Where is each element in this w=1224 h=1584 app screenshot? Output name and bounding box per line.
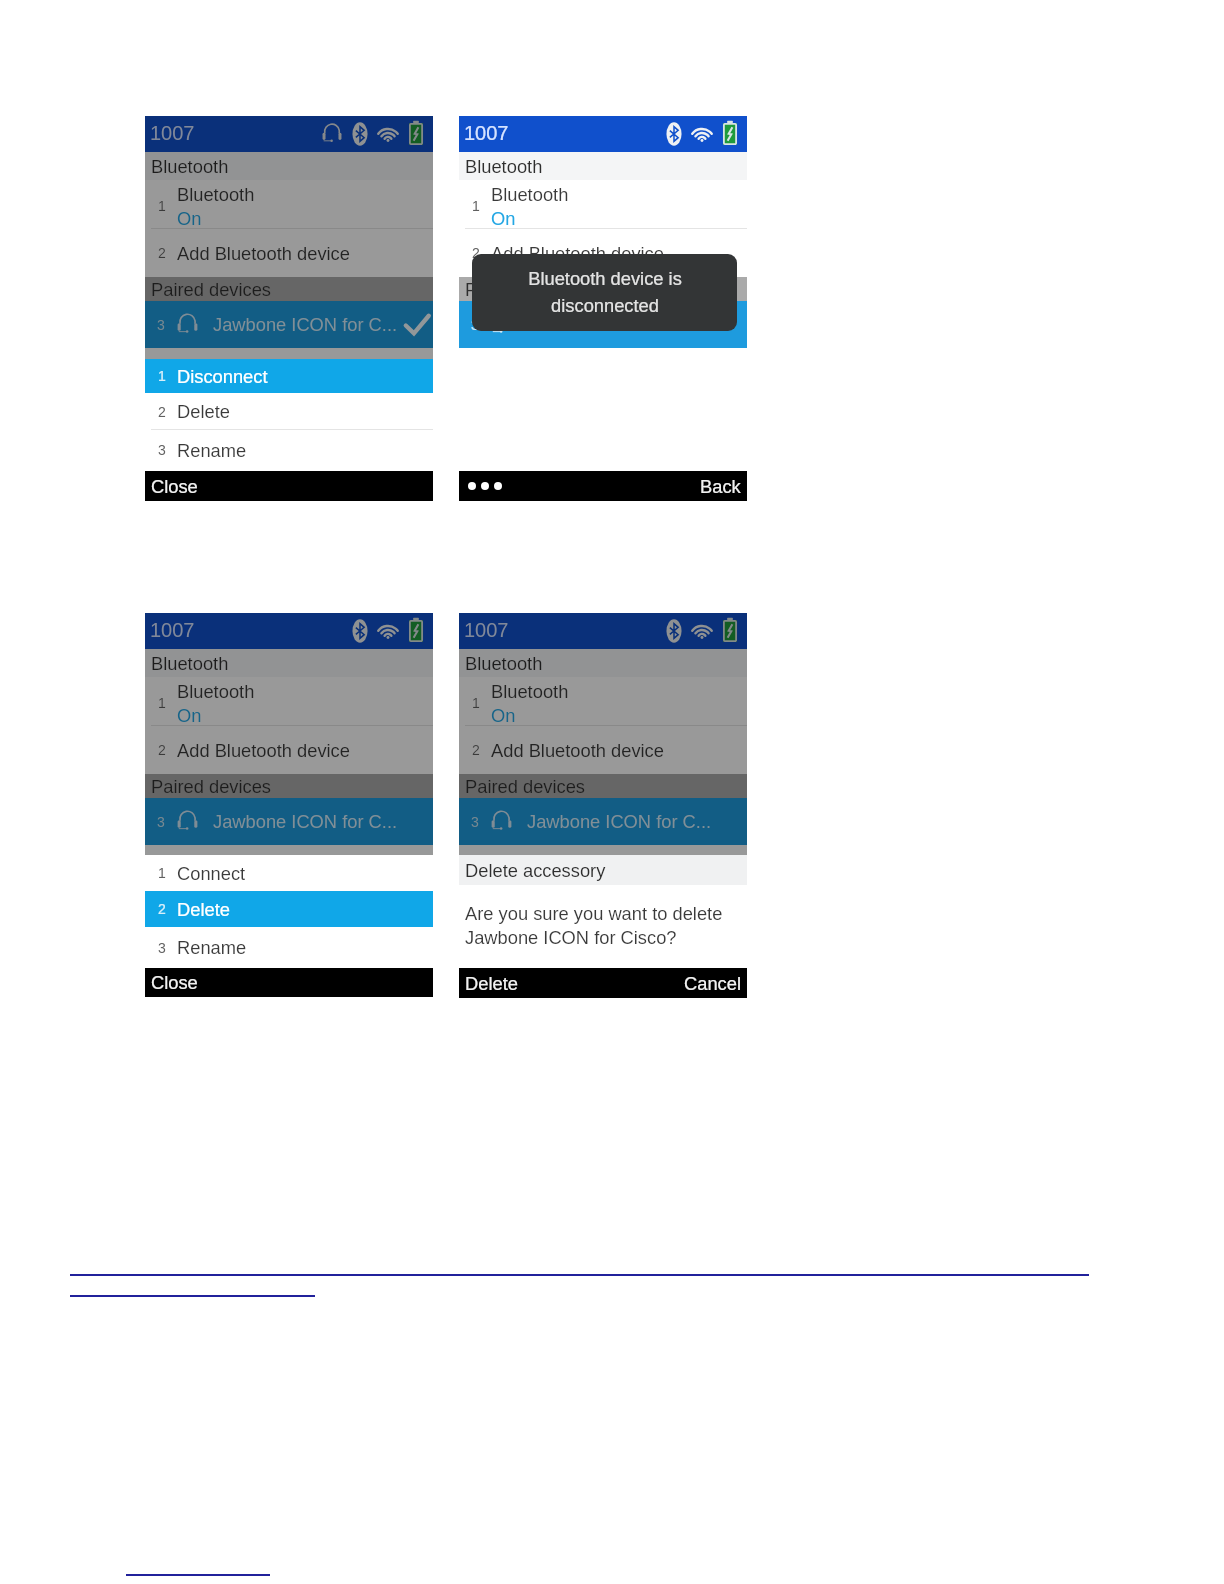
other: Headset connected bbox=[319, 121, 345, 147]
staticText: 3 bbox=[158, 940, 166, 956]
staticText: Bluetooth device is disconnected bbox=[528, 268, 682, 316]
staticText: On bbox=[177, 705, 202, 725]
button[interactable]: 3 bbox=[145, 430, 433, 470]
button[interactable]: 3 bbox=[459, 798, 747, 845]
staticText: Disconnect bbox=[177, 366, 268, 386]
staticText: 3 bbox=[157, 317, 165, 333]
staticText: Jawbone ICON for C... bbox=[527, 811, 712, 831]
staticText: 3 bbox=[158, 442, 166, 458]
staticText: Close bbox=[151, 972, 198, 992]
staticText: 1 bbox=[472, 198, 480, 214]
other: Battery charging bbox=[717, 618, 743, 644]
button[interactable]: Delete bbox=[459, 968, 579, 998]
staticText: 1 bbox=[158, 695, 166, 711]
staticText: Rename bbox=[177, 440, 247, 460]
button[interactable]: Cancel bbox=[637, 968, 747, 998]
other: Wi-Fi bbox=[689, 121, 715, 147]
staticText: 2 bbox=[158, 742, 166, 758]
staticText: 1 bbox=[158, 865, 166, 881]
staticText: Bluetooth bbox=[177, 184, 255, 204]
other: Battery charging bbox=[403, 618, 429, 644]
button[interactable]: 2 bbox=[145, 229, 433, 277]
button[interactable]: 3 bbox=[145, 301, 433, 348]
staticText: Jawbone ICON for C... bbox=[527, 314, 712, 334]
button[interactable]: Close bbox=[145, 471, 265, 501]
staticText: Rename bbox=[177, 937, 247, 957]
staticText: Add Bluetooth device bbox=[177, 740, 350, 760]
staticText: Bluetooth bbox=[465, 156, 543, 176]
button[interactable]: 3 bbox=[145, 798, 433, 845]
button[interactable]: 1 bbox=[145, 677, 433, 726]
staticText: Are you sure you want to delete Jawbone … bbox=[465, 903, 723, 948]
button[interactable]: Close bbox=[145, 968, 265, 997]
button[interactable]: 2 bbox=[145, 393, 433, 430]
staticText: Paired devices bbox=[151, 279, 272, 299]
button[interactable]: 3 bbox=[459, 301, 747, 348]
staticText: On bbox=[491, 208, 516, 228]
staticText: Bluetooth bbox=[491, 681, 569, 701]
staticText: 1 bbox=[472, 695, 480, 711]
staticText: On bbox=[177, 208, 202, 228]
staticText: 2 bbox=[472, 245, 480, 261]
staticText: Cancel bbox=[684, 973, 741, 993]
other: Bluetooth on bbox=[347, 121, 373, 147]
staticText: Bluetooth bbox=[177, 681, 255, 701]
button[interactable]: 1 bbox=[145, 180, 433, 229]
staticText: Add Bluetooth device bbox=[491, 740, 664, 760]
staticText: 3 bbox=[157, 814, 165, 830]
staticText: 2 bbox=[472, 742, 480, 758]
button[interactable]: 2 bbox=[459, 229, 747, 277]
other: Battery charging bbox=[403, 121, 429, 147]
staticText: 1007 bbox=[464, 122, 509, 144]
button[interactable]: 1 bbox=[145, 855, 433, 891]
staticText: Jawbone ICON for C... bbox=[213, 314, 398, 334]
staticText: Paired devices bbox=[465, 776, 586, 796]
staticText: Delete bbox=[177, 401, 230, 421]
button[interactable]: 2 bbox=[145, 726, 433, 774]
other: Bluetooth on bbox=[347, 618, 373, 644]
button[interactable]: Back bbox=[637, 471, 747, 501]
staticText: Bluetooth bbox=[151, 653, 229, 673]
staticText: Back bbox=[700, 476, 741, 496]
other: Wi-Fi bbox=[375, 618, 401, 644]
staticText: 1007 bbox=[150, 122, 195, 144]
staticText: Paired devices bbox=[465, 279, 586, 299]
button[interactable]: More options bbox=[459, 471, 519, 501]
button[interactable]: 2 bbox=[145, 891, 433, 927]
other: Battery charging bbox=[717, 121, 743, 147]
staticText: Close bbox=[151, 476, 198, 496]
other: Bluetooth on bbox=[661, 121, 687, 147]
staticText: Bluetooth bbox=[151, 156, 229, 176]
button[interactable]: 3 bbox=[145, 927, 433, 968]
other: Connected bbox=[403, 311, 431, 339]
staticText: Paired devices bbox=[151, 776, 272, 796]
staticText: Delete bbox=[465, 973, 518, 993]
button[interactable]: 1 bbox=[459, 180, 747, 229]
staticText: Bluetooth bbox=[465, 653, 543, 673]
button[interactable]: 1 bbox=[459, 677, 747, 726]
staticText: On bbox=[491, 705, 516, 725]
staticText: Connect bbox=[177, 863, 246, 883]
staticText: Delete accessory bbox=[465, 860, 606, 880]
staticText: 1007 bbox=[464, 619, 509, 641]
staticText: 2 bbox=[158, 404, 166, 420]
staticText: 1 bbox=[158, 368, 166, 384]
staticText: Jawbone ICON for C... bbox=[213, 811, 398, 831]
other: Bluetooth on bbox=[661, 618, 687, 644]
other: Wi-Fi bbox=[375, 121, 401, 147]
staticText: 2 bbox=[158, 901, 166, 917]
staticText: 2 bbox=[158, 245, 166, 261]
button[interactable]: 2 bbox=[459, 726, 747, 774]
staticText: 3 bbox=[471, 814, 479, 830]
staticText: Add Bluetooth device bbox=[491, 243, 664, 263]
staticText: Add Bluetooth device bbox=[177, 243, 350, 263]
staticText: 3 bbox=[471, 317, 479, 333]
staticText: Delete bbox=[177, 899, 230, 919]
staticText: 1 bbox=[158, 198, 166, 214]
staticText: Bluetooth bbox=[491, 184, 569, 204]
other: Wi-Fi bbox=[689, 618, 715, 644]
button[interactable]: 1 bbox=[145, 359, 433, 393]
